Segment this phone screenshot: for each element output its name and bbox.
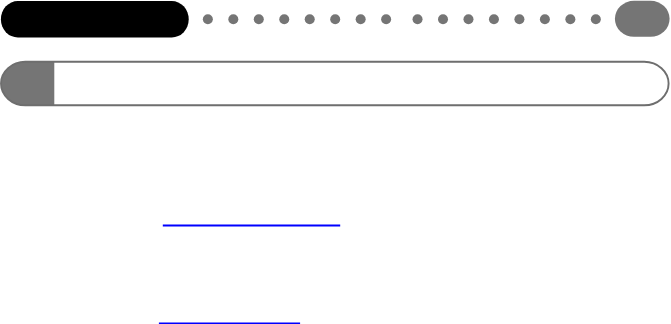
button[interactable]: Primary action <box>0 0 190 39</box>
button[interactable]: Link two <box>156 302 304 324</box>
button[interactable]: Secondary action <box>612 0 671 39</box>
button[interactable]: Progress <box>0 58 671 108</box>
button[interactable]: Link one <box>160 205 344 227</box>
button[interactable]: Page indicator <box>198 8 602 32</box>
